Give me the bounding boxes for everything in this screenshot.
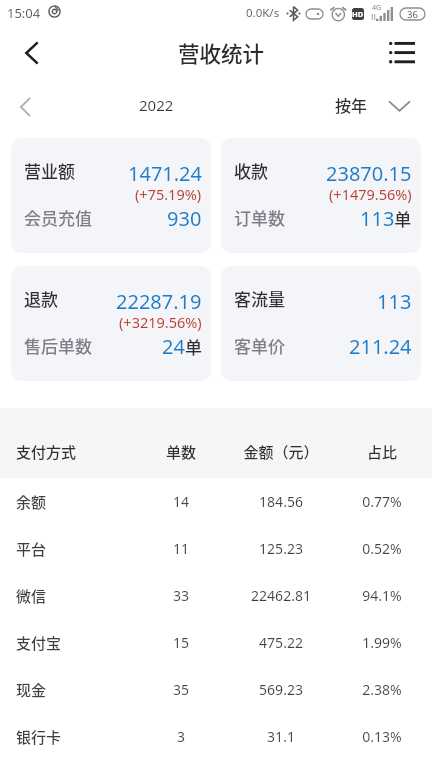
staticText: 3: [141, 727, 221, 746]
staticText: (+3219.56%): [119, 312, 202, 332]
staticText: HD: [352, 9, 364, 19]
staticText: 15: [141, 633, 221, 652]
staticText: 客单价: [234, 333, 285, 358]
button[interactable]: 按年: [326, 85, 424, 128]
button[interactable]: 退款: [11, 266, 211, 381]
button[interactable]: Previous year: [3, 85, 48, 128]
staticText: 1.99%: [342, 633, 422, 652]
staticText: 金额（元）: [231, 441, 331, 463]
staticText: 客流量: [234, 286, 285, 311]
button[interactable]: [0, 479, 432, 526]
staticText: 113: [377, 288, 412, 315]
staticText: 2022: [139, 95, 174, 115]
staticText: 22287.19: [116, 288, 202, 315]
staticText: 售后单数: [24, 333, 92, 358]
staticText: 569.23: [231, 680, 331, 699]
button[interactable]: Menu: [379, 29, 424, 76]
staticText: 4G: [372, 3, 382, 13]
button[interactable]: [0, 573, 432, 620]
button[interactable]: Back: [6, 29, 58, 76]
staticText: 24单: [162, 333, 202, 360]
button[interactable]: 客流量: [221, 266, 421, 381]
staticText: 930: [167, 205, 202, 232]
staticText: 支付宝: [16, 632, 62, 654]
staticText: 475.22: [231, 633, 331, 652]
staticText: 2.38%: [342, 680, 422, 699]
staticText: 31.1: [231, 727, 331, 746]
staticText: (+75.19%): [135, 184, 202, 204]
staticText: 按年: [335, 93, 368, 116]
staticText: 22462.81: [231, 586, 331, 605]
staticText: 15:04: [7, 4, 41, 22]
staticText: 会员充值: [24, 205, 92, 230]
staticText: 微信: [16, 585, 47, 607]
staticText: 收款: [234, 158, 268, 183]
staticText: 单数: [141, 441, 221, 463]
button[interactable]: 营业额: [11, 138, 211, 253]
staticText: 94.1%: [342, 586, 422, 605]
button[interactable]: [0, 620, 432, 667]
staticText: 0.13%: [342, 727, 422, 746]
staticText: 订单数: [234, 205, 285, 230]
staticText: 1471.24: [128, 160, 202, 187]
staticText: 113单: [360, 205, 412, 232]
staticText: 支付方式: [16, 441, 77, 463]
staticText: 14: [141, 492, 221, 511]
staticText: 35: [141, 680, 221, 699]
staticText: 11: [141, 539, 221, 558]
staticText: (+1479.56%): [329, 184, 412, 204]
staticText: 33: [141, 586, 221, 605]
button[interactable]: [0, 714, 432, 761]
staticText: 184.56: [231, 492, 331, 511]
staticText: 211.24: [349, 333, 412, 360]
staticText: 0.52%: [342, 539, 422, 558]
staticText: 银行卡: [16, 726, 62, 748]
staticText: 占比: [342, 441, 422, 463]
staticText: 23870.15: [326, 160, 412, 187]
staticText: 平台: [16, 538, 47, 560]
button[interactable]: [0, 667, 432, 714]
staticText: 营业额: [24, 158, 75, 183]
staticText: 现金: [16, 679, 47, 701]
staticText: 125.23: [231, 539, 331, 558]
other: Bluetooth: [287, 6, 300, 21]
staticText: 营收统计: [178, 37, 265, 68]
staticText: 36: [407, 8, 418, 20]
button[interactable]: 收款: [221, 138, 421, 253]
button[interactable]: [0, 526, 432, 573]
staticText: 0.0K/s: [246, 5, 280, 21]
staticText: 0.77%: [342, 492, 422, 511]
staticText: 退款: [24, 286, 58, 311]
staticText: 余额: [16, 491, 47, 513]
